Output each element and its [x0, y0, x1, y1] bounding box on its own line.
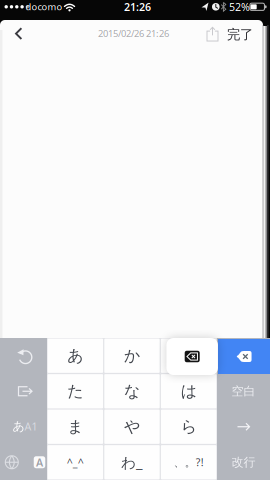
- staticText: 空白: [231, 384, 255, 399]
- staticText: は: [181, 381, 197, 401]
- button[interactable]: ま: [48, 410, 103, 444]
- staticText: docomo: [25, 0, 62, 13]
- button[interactable]: Input mode: [10, 419, 40, 433]
- button[interactable]: あ: [48, 339, 103, 373]
- button[interactable]: Next keyboard: [5, 455, 19, 469]
- staticText: な: [124, 381, 140, 401]
- staticText: 2015/02/26 21:26: [98, 27, 169, 40]
- button[interactable]: Delete: [218, 339, 270, 374]
- staticText: A: [36, 455, 43, 469]
- staticText: 改行: [231, 455, 255, 470]
- button[interactable]: か: [104, 339, 160, 373]
- staticText: わ_: [121, 452, 143, 472]
- button[interactable]: 完了: [223, 25, 257, 43]
- button[interactable]: Keyboard menu: [34, 456, 45, 468]
- button[interactable]: Cursor right: [237, 423, 250, 431]
- staticText: 完了: [227, 26, 253, 43]
- button[interactable]: ^_^: [48, 445, 103, 479]
- button[interactable]: Back: [13, 27, 25, 41]
- staticText: 52%: [229, 0, 250, 14]
- button[interactable]: わ_: [104, 445, 160, 479]
- button[interactable]: な: [104, 374, 160, 408]
- button[interactable]: た: [48, 374, 103, 408]
- button[interactable]: 改行: [217, 445, 270, 480]
- button[interactable]: や: [104, 410, 160, 444]
- staticText: あ: [67, 346, 83, 366]
- staticText: さ: [181, 346, 197, 366]
- staticText: ら: [181, 417, 197, 437]
- button[interactable]: は: [161, 374, 216, 408]
- staticText: や: [124, 417, 140, 437]
- staticText: 21:26: [124, 0, 151, 14]
- staticText: ^_^: [67, 455, 84, 469]
- button[interactable]: 空白: [217, 374, 270, 409]
- button[interactable]: Undo: [17, 348, 34, 365]
- button[interactable]: Paste: [18, 386, 33, 396]
- staticText: ま: [67, 417, 83, 437]
- staticText: A1: [24, 419, 37, 433]
- staticText: か: [124, 346, 140, 366]
- button[interactable]: Share: [206, 26, 218, 41]
- staticText: た: [67, 381, 83, 401]
- staticText: あ: [12, 419, 24, 434]
- button[interactable]: ら: [161, 410, 216, 444]
- staticText: 、。?!: [174, 455, 204, 469]
- button[interactable]: 、。?!: [161, 445, 216, 479]
- button[interactable]: さ: [161, 339, 216, 373]
